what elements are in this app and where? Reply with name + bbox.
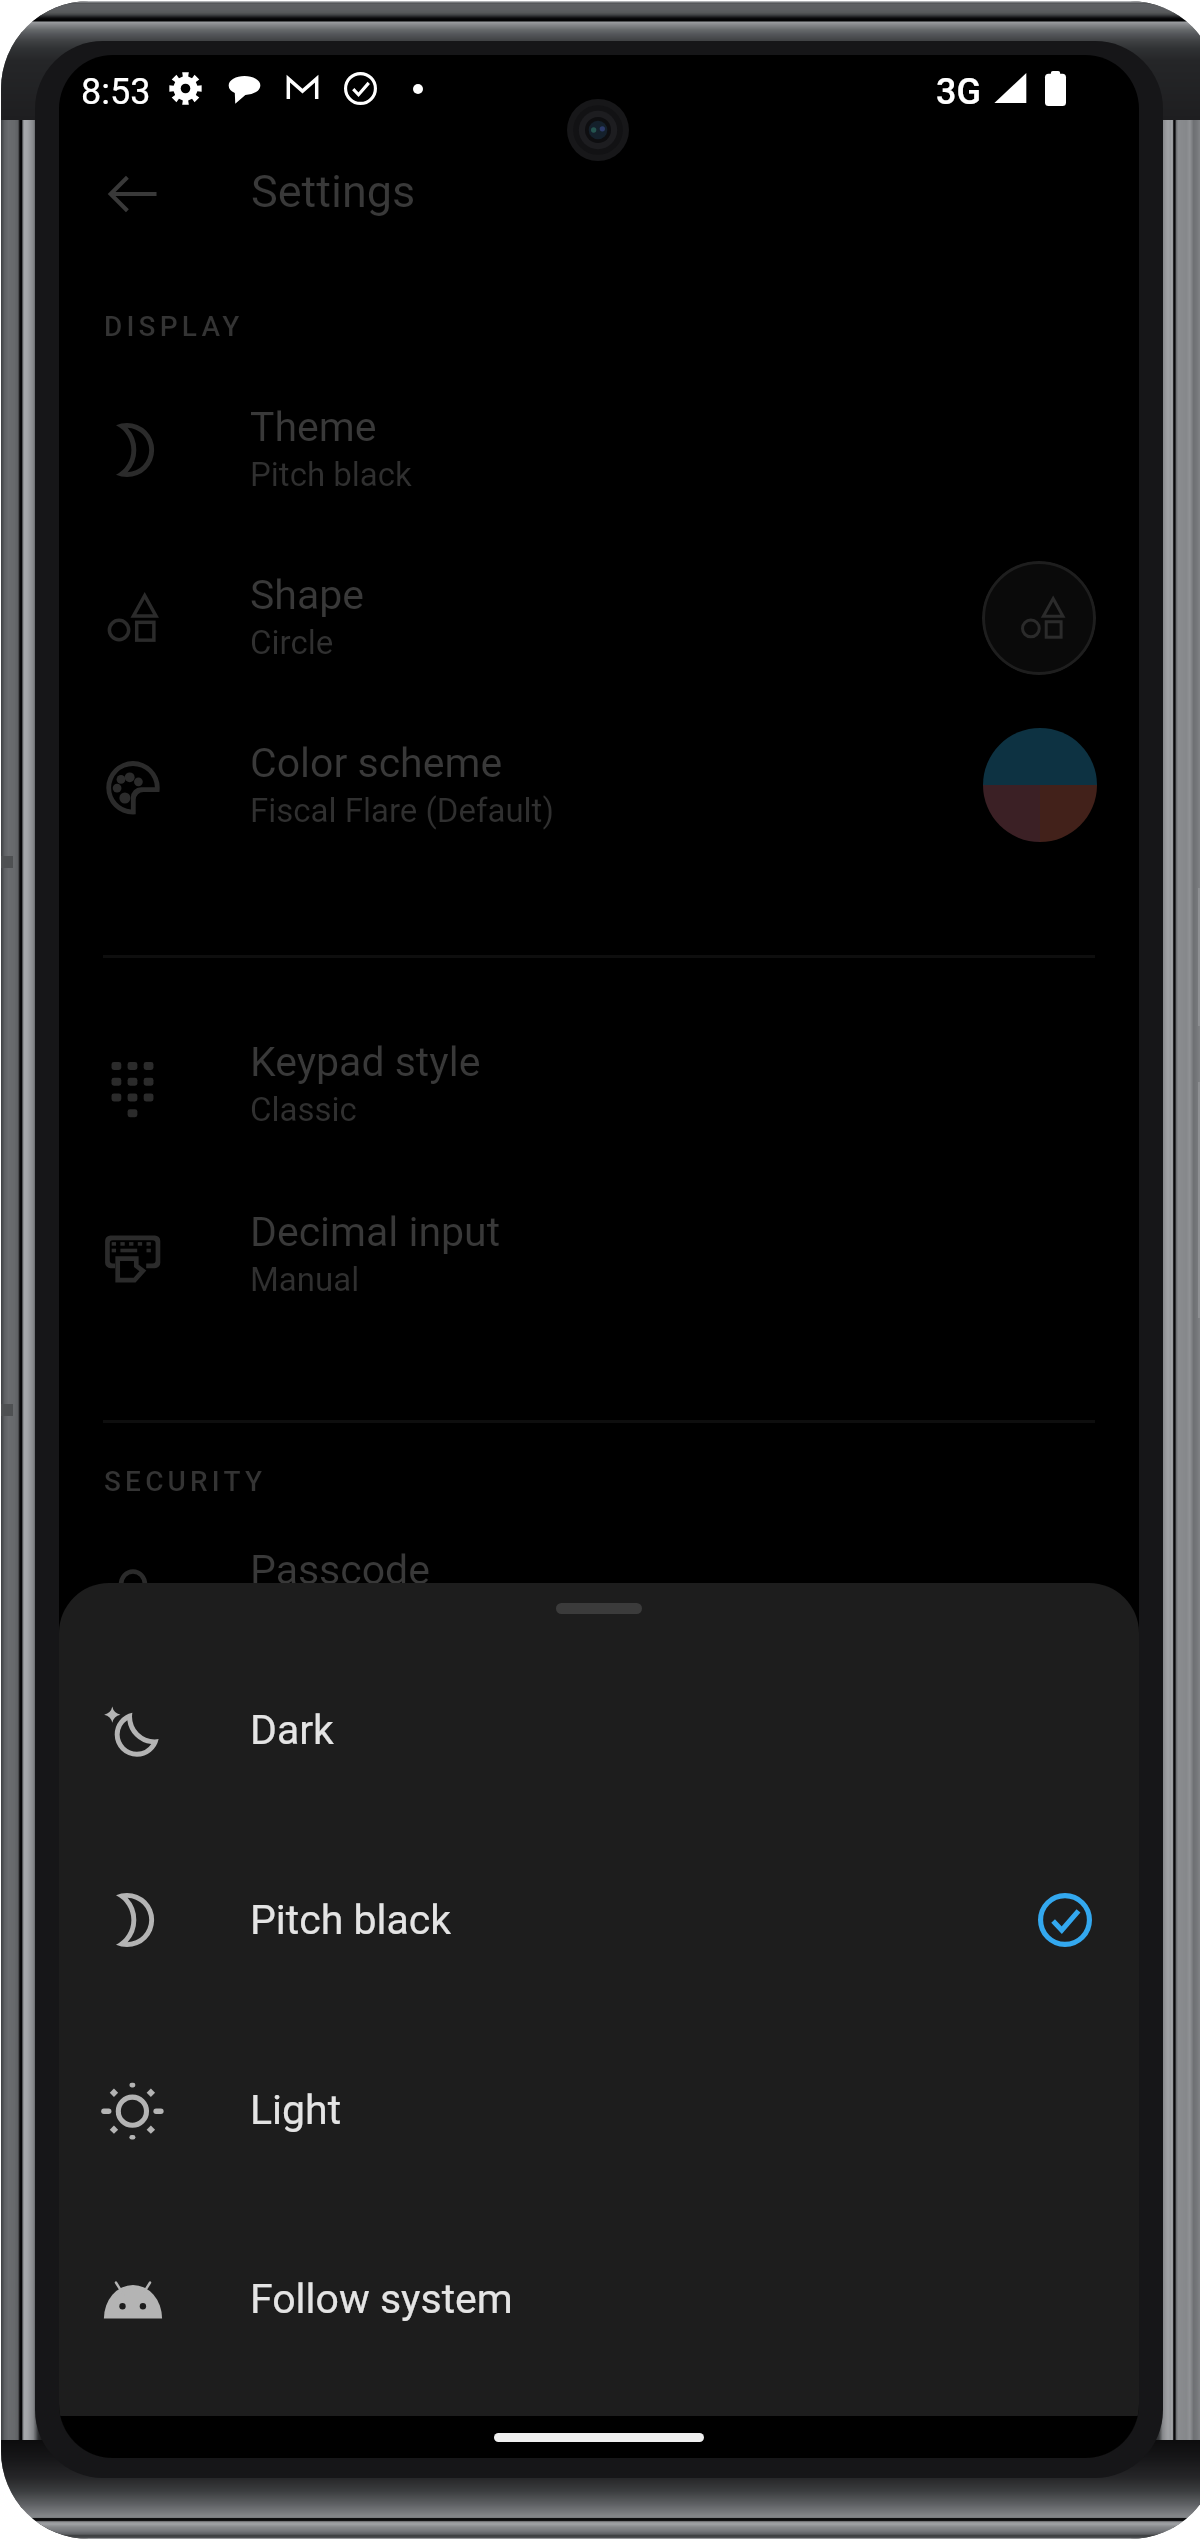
button[interactable]: Follow system — [59, 2204, 1139, 2394]
staticText: Circle — [250, 623, 334, 662]
staticText: Settings — [251, 165, 416, 218]
button[interactable]: Theme — [59, 361, 1139, 529]
staticText: Passcode — [250, 1546, 430, 1594]
staticText: Keypad style — [250, 1038, 481, 1086]
button[interactable]: Light — [59, 2015, 1139, 2205]
staticText: Pitch black — [250, 1896, 451, 1944]
staticText: Theme — [250, 403, 377, 451]
staticText: Pitch black — [250, 455, 412, 494]
staticText: SECURITY — [104, 1465, 267, 1498]
staticText: 8:53 — [81, 71, 151, 113]
staticText: DISPLAY — [104, 310, 244, 343]
button[interactable]: Color scheme — [59, 697, 1139, 865]
staticText: Fiscal Flare (Default) — [250, 791, 554, 830]
button[interactable]: Shape preview — [982, 561, 1096, 675]
staticText: Decimal input — [250, 1208, 501, 1256]
button[interactable]: Decimal input — [59, 1166, 1139, 1334]
button[interactable]: Back — [105, 166, 161, 222]
button[interactable]: Dark — [59, 1635, 1139, 1825]
staticText: Light — [250, 2086, 342, 2134]
button[interactable]: Colour scheme preview — [983, 728, 1097, 842]
button[interactable]: Passcode — [59, 1504, 1139, 1672]
staticText: Shape — [250, 571, 364, 619]
button[interactable]: Keypad style — [59, 996, 1139, 1164]
staticText: Follow system — [250, 2275, 513, 2323]
staticText: Color scheme — [250, 739, 503, 787]
button[interactable]: Shape — [59, 529, 1139, 697]
staticText: Manual — [250, 1260, 360, 1299]
staticText: 3G — [936, 71, 981, 113]
staticText: Classic — [250, 1090, 357, 1129]
staticText: Dark — [250, 1706, 334, 1754]
button[interactable]: Pitch black — [59, 1825, 1139, 2015]
